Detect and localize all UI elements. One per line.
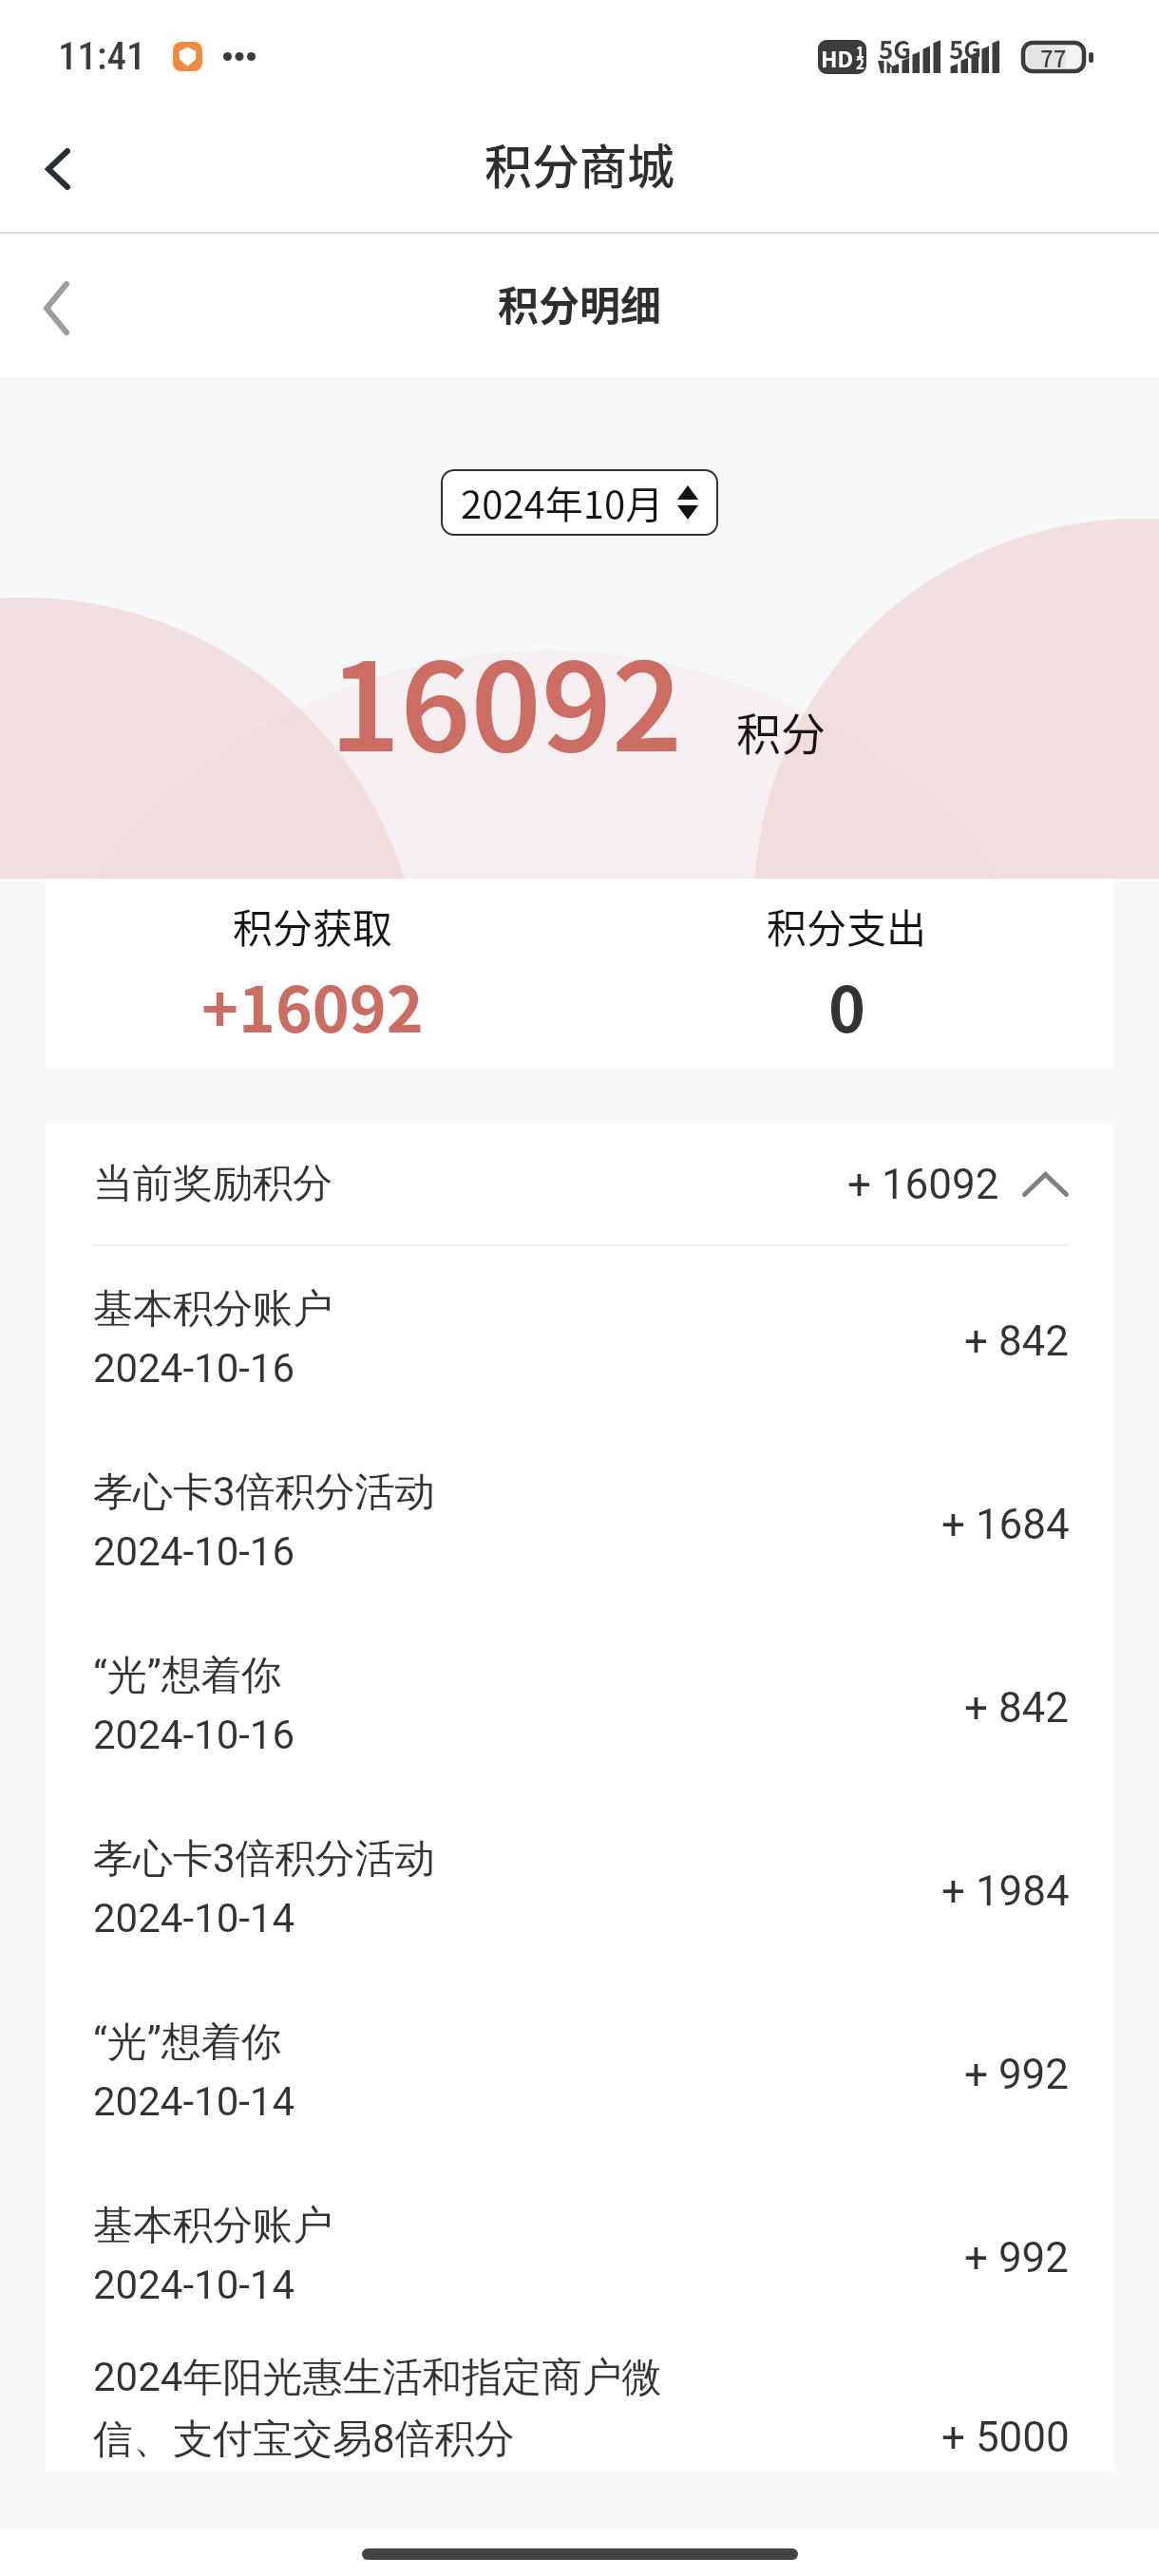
staticText: 积分 bbox=[736, 698, 826, 763]
button[interactable]: 基本积分账户 bbox=[46, 2163, 1113, 2346]
staticText: 2024-10-16 bbox=[93, 1528, 295, 1575]
button[interactable]: 2024年阳光惠生活和指定商户微 信、支付宝交易8倍积分 bbox=[46, 2346, 1113, 2472]
staticText: 1 bbox=[856, 42, 864, 63]
staticText: 2024-10-14 bbox=[93, 1895, 295, 1941]
staticText: 77 bbox=[1040, 41, 1067, 73]
button[interactable]: Back bbox=[4, 256, 108, 360]
button[interactable]: “光”想着你 bbox=[46, 1979, 1113, 2163]
staticText: 2024-10-16 bbox=[93, 1712, 295, 1758]
staticText: 5G bbox=[949, 30, 981, 63]
staticText: 当前奖励积分 bbox=[93, 1159, 332, 1209]
staticText: 积分明细 bbox=[498, 274, 661, 332]
staticText: 2024-10-16 bbox=[93, 1345, 295, 1392]
button[interactable]: 孝心卡3倍积分活动 bbox=[46, 1430, 1113, 1613]
staticText: 积分获取 bbox=[233, 897, 393, 955]
staticText: + 842 bbox=[964, 1316, 1070, 1366]
button[interactable]: 当前奖励积分 bbox=[46, 1124, 1113, 1244]
staticText: 5G bbox=[879, 30, 911, 63]
staticText: 积分支出 bbox=[767, 897, 927, 955]
staticText: + 5000 bbox=[941, 2413, 1070, 2462]
staticText: 积分商城 bbox=[484, 129, 674, 198]
staticText: 2024-10-14 bbox=[93, 2262, 295, 2308]
staticText: 孝心卡3倍积分活动 bbox=[93, 1468, 435, 1518]
button[interactable]: “光”想着你 bbox=[46, 1613, 1113, 1796]
staticText: + 1984 bbox=[941, 1866, 1070, 1916]
button[interactable]: 基本积分账户 bbox=[46, 1246, 1113, 1430]
staticText: HD bbox=[821, 42, 853, 73]
staticText: +16092 bbox=[201, 959, 424, 1051]
staticText: 16092 bbox=[330, 611, 683, 786]
staticText: + 1684 bbox=[941, 1500, 1070, 1549]
staticText: 2024-10-14 bbox=[93, 2078, 295, 2125]
staticText: + 992 bbox=[964, 2233, 1070, 2282]
staticText: + 16092 bbox=[847, 1160, 999, 1209]
staticText: 2024年10月 bbox=[461, 475, 664, 530]
staticText: 0 bbox=[828, 959, 865, 1051]
staticText: 孝心卡3倍积分活动 bbox=[93, 1834, 435, 1885]
staticText: + 992 bbox=[964, 2050, 1070, 2099]
button[interactable]: Back bbox=[6, 117, 110, 221]
staticText: 基本积分账户 bbox=[93, 2201, 332, 2251]
button[interactable]: 2024年10月 bbox=[441, 469, 718, 536]
button[interactable]: 孝心卡3倍积分活动 bbox=[46, 1796, 1113, 1979]
staticText: + 842 bbox=[964, 1683, 1070, 1733]
staticText: 2 bbox=[856, 53, 864, 74]
staticText: 基本积分账户 bbox=[93, 1284, 332, 1335]
staticText: 2024年阳光惠生活和指定商户微 信、支付宝交易8倍积分 bbox=[93, 2353, 662, 2465]
staticText: “光”想着你 bbox=[93, 1651, 281, 1701]
staticText: “光”想着你 bbox=[93, 2017, 281, 2068]
staticText: 11:41 bbox=[58, 33, 146, 79]
